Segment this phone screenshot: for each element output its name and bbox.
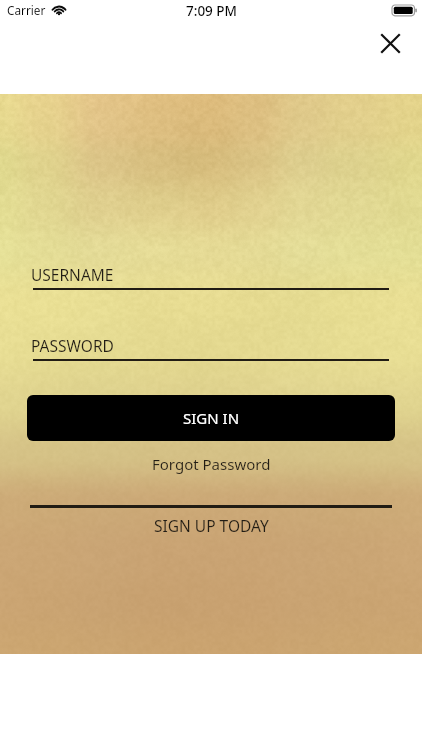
staticText: Forgot Password [152,454,271,474]
staticText: PASSWORD [31,335,114,356]
staticText: Carrier [7,2,46,18]
staticText: SIGN IN [183,408,240,428]
button[interactable]: SIGN UP TODAY [0,514,422,536]
staticText: SIGN UP TODAY [154,515,269,536]
button[interactable]: SIGN IN [27,395,395,441]
button[interactable]: USERNAME [31,264,389,290]
staticText: USERNAME [31,264,114,285]
staticText: 7:09 PM [186,2,237,20]
button[interactable]: Close [371,24,410,63]
button[interactable]: Forgot Password [0,453,422,475]
button[interactable]: PASSWORD [31,335,389,361]
